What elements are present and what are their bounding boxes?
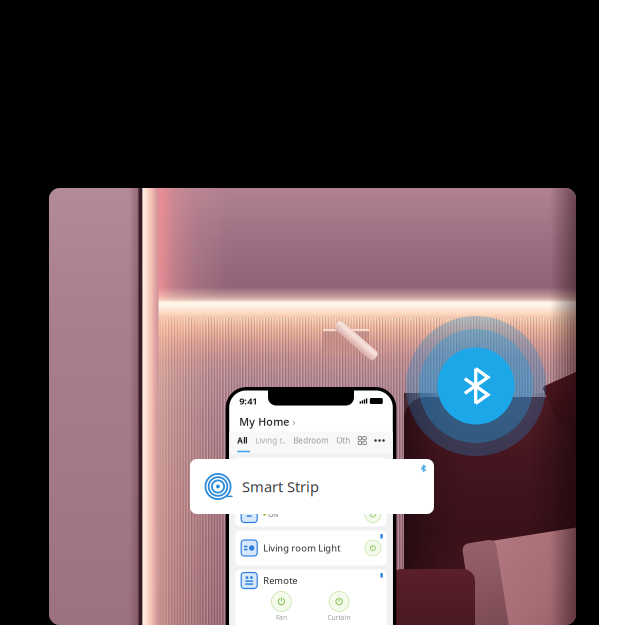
staticText: ON [268,510,278,519]
staticText: My Home [239,414,289,429]
staticText: Curtain [328,613,351,622]
staticText: All [237,435,247,446]
staticText: Smart Strip [242,477,319,496]
button[interactable]: Smart Strip [190,459,434,514]
staticText: Bedroom [293,435,328,446]
staticText: Living room Light [263,542,340,554]
staticText: Oth [336,435,350,446]
staticText: Fan [276,613,287,622]
staticText: Remote [263,574,297,587]
staticText: Living r.. [255,435,285,446]
staticText: › [292,414,295,429]
staticText: 9:41 [239,395,257,407]
